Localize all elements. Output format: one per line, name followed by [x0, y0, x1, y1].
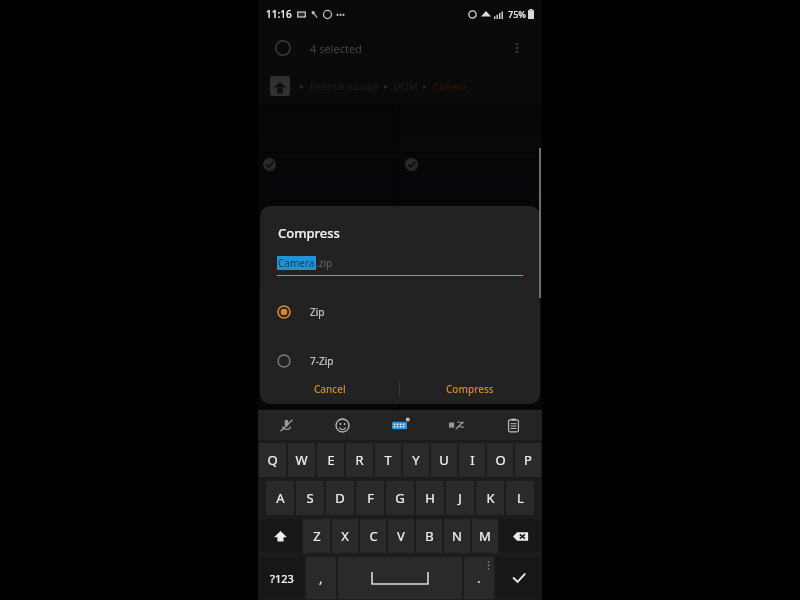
button[interactable]: K: [476, 481, 504, 515]
staticText: W: [295, 451, 308, 469]
staticText: J: [458, 489, 462, 507]
staticText: Camera: [278, 256, 315, 270]
staticText: D: [335, 489, 345, 507]
staticText: .: [477, 569, 481, 587]
button[interactable]: ?123: [259, 557, 304, 599]
staticText: ?123: [270, 571, 294, 586]
staticText: G: [395, 489, 405, 507]
button[interactable]: Space: [338, 557, 462, 599]
staticText: B: [425, 527, 434, 545]
button[interactable]: 4 selected: [270, 28, 530, 68]
button[interactable]: Voice input: [258, 410, 314, 440]
button[interactable]: Zip: [260, 300, 540, 324]
staticText: R: [355, 451, 364, 469]
button[interactable]: [258, 153, 399, 201]
button[interactable]: Shift: [259, 519, 301, 553]
staticText: ▸: [300, 82, 305, 91]
staticText: P: [524, 451, 532, 469]
staticText: Cancel: [314, 382, 346, 396]
button[interactable]: M: [472, 519, 498, 553]
button[interactable]: .: [464, 557, 494, 599]
button[interactable]: Emoji: [314, 410, 371, 440]
button[interactable]: L: [506, 481, 534, 515]
button[interactable]: V: [388, 519, 414, 553]
staticText: DCIM: [394, 80, 418, 92]
staticText: Compress: [446, 382, 494, 396]
staticText: A: [276, 489, 285, 507]
button[interactable]: X: [332, 519, 358, 553]
button[interactable]: [400, 153, 542, 201]
button[interactable]: U: [431, 443, 457, 477]
button[interactable]: G: [386, 481, 414, 515]
staticText: 75%: [508, 8, 526, 20]
staticText: M: [479, 527, 491, 545]
staticText: 7-Zip: [310, 354, 334, 368]
staticText: U: [439, 451, 449, 469]
button[interactable]: C: [360, 519, 386, 553]
staticText: •••: [336, 9, 346, 20]
button[interactable]: E: [317, 443, 344, 477]
staticText: C: [369, 527, 378, 545]
button[interactable]: Compress: [400, 373, 540, 404]
staticText: N: [452, 527, 462, 545]
staticText: .zip: [316, 256, 333, 270]
button[interactable]: Keyboard layout: [371, 410, 428, 440]
staticText: K: [486, 489, 495, 507]
button[interactable]: Backspace: [500, 519, 541, 553]
staticText: Internal storage: [310, 80, 379, 92]
button[interactable]: I: [459, 443, 485, 477]
button[interactable]: W: [288, 443, 315, 477]
button[interactable]: ,: [306, 557, 336, 599]
staticText: 4 selected: [310, 41, 362, 56]
button[interactable]: D: [326, 481, 354, 515]
button[interactable]: R: [346, 443, 373, 477]
staticText: H: [425, 489, 435, 507]
staticText: Camera: [433, 80, 466, 92]
staticText: ▸: [423, 82, 428, 91]
button[interactable]: Q: [259, 443, 286, 477]
staticText: T: [384, 451, 392, 469]
button[interactable]: N: [444, 519, 470, 553]
button[interactable]: Camera: [277, 256, 523, 276]
button[interactable]: P: [515, 443, 541, 477]
staticText: Compress: [278, 224, 340, 242]
button[interactable]: B: [416, 519, 442, 553]
staticText: F: [367, 489, 374, 507]
staticText: X: [341, 527, 349, 545]
staticText: S: [306, 489, 314, 507]
staticText: V: [397, 527, 405, 545]
staticText: L: [517, 489, 524, 507]
button[interactable]: More options: [504, 35, 530, 61]
staticText: Y: [412, 451, 420, 469]
staticText: E: [327, 451, 335, 469]
button[interactable]: Done: [496, 557, 541, 599]
button[interactable]: H: [416, 481, 444, 515]
staticText: Zip: [310, 305, 325, 319]
button[interactable]: S: [296, 481, 324, 515]
button[interactable]: [400, 104, 542, 152]
button[interactable]: Y: [403, 443, 429, 477]
staticText: ▸: [384, 82, 389, 91]
button[interactable]: A: [266, 481, 294, 515]
button[interactable]: [258, 202, 399, 410]
staticText: ,: [319, 569, 323, 587]
staticText: 11:16: [266, 7, 292, 21]
staticText: Q: [267, 451, 278, 469]
button[interactable]: Clipboard: [485, 410, 542, 440]
button[interactable]: J: [446, 481, 474, 515]
button[interactable]: F: [356, 481, 384, 515]
staticText: Z: [313, 527, 321, 545]
button[interactable]: Translate: [428, 410, 485, 440]
staticText: O: [495, 451, 506, 469]
button[interactable]: Z: [303, 519, 330, 553]
staticText: I: [470, 451, 475, 469]
button[interactable]: O: [487, 443, 513, 477]
button[interactable]: [400, 202, 542, 410]
button[interactable]: T: [375, 443, 401, 477]
button[interactable]: 7-Zip: [260, 349, 540, 373]
button[interactable]: Cancel: [260, 373, 399, 404]
